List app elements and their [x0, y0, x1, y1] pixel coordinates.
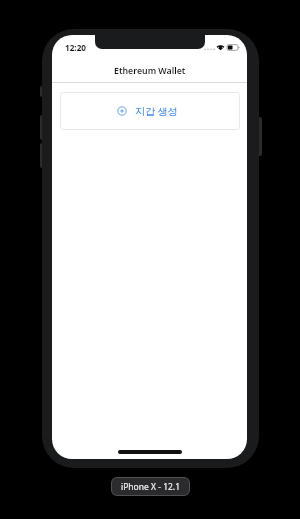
- button[interactable]: 지갑 생성: [60, 92, 240, 130]
- staticText: 지갑 생성: [135, 104, 178, 118]
- staticText: 12:20: [65, 42, 87, 53]
- staticText: iPhone X - 12.1: [121, 481, 180, 493]
- staticText: Ethereum Wallet: [114, 65, 186, 77]
